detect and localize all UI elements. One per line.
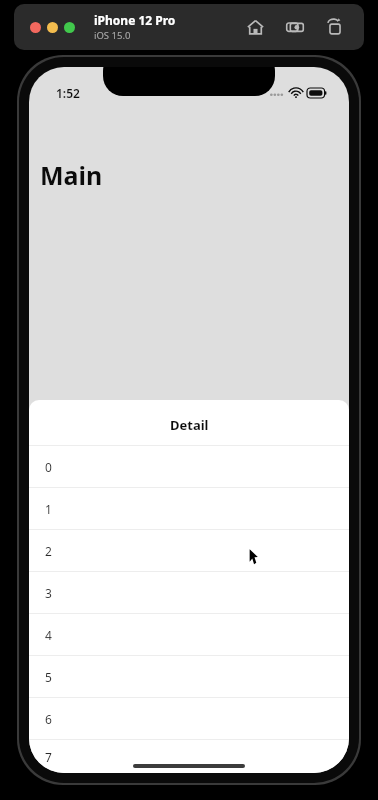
- staticText: 4: [45, 627, 52, 643]
- staticText: iOS 15.0: [94, 29, 131, 42]
- button[interactable]: 0: [29, 446, 349, 487]
- button[interactable]: 6: [29, 698, 349, 739]
- staticText: Detail: [170, 416, 209, 434]
- button[interactable]: Close: [30, 22, 41, 33]
- button[interactable]: 1: [29, 488, 349, 529]
- button[interactable]: 5: [29, 656, 349, 697]
- button[interactable]: 3: [29, 572, 349, 613]
- staticText: 5: [45, 669, 52, 685]
- staticText: 3: [45, 585, 52, 601]
- staticText: iPhone 12 Pro: [94, 12, 176, 28]
- button[interactable]: Rotate: [320, 12, 350, 42]
- staticText: 7: [45, 749, 52, 765]
- button[interactable]: Screenshot: [280, 12, 310, 42]
- staticText: 2: [45, 543, 52, 559]
- staticText: 6: [45, 711, 52, 727]
- button[interactable]: Zoom: [64, 22, 75, 33]
- button[interactable]: 2: [29, 530, 349, 571]
- staticText: 0: [45, 459, 52, 475]
- button[interactable]: 7: [29, 740, 349, 773]
- button[interactable]: Minimize: [47, 22, 58, 33]
- button[interactable]: Home: [240, 12, 270, 42]
- staticText: Main: [40, 158, 103, 192]
- staticText: 1: [45, 501, 52, 517]
- button[interactable]: 4: [29, 614, 349, 655]
- staticText: 1:52: [56, 85, 80, 101]
